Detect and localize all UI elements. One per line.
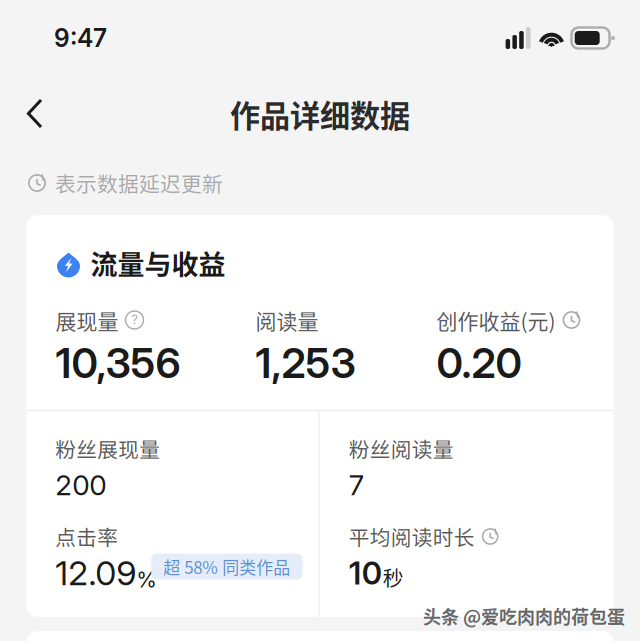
staticText: 表示数据延迟更新 <box>55 168 223 198</box>
staticText: 头条 @爱吃肉肉的荷包蛋 <box>423 603 625 629</box>
staticText: 创作收益(元) <box>436 305 555 335</box>
staticText: 12.09 <box>55 552 136 593</box>
staticText: % <box>136 567 157 593</box>
staticText: 作品详细数据 <box>230 92 410 136</box>
button[interactable]: Back <box>13 94 57 134</box>
staticText: 0.20 <box>436 338 521 388</box>
staticText: 7 <box>349 468 364 502</box>
staticText: 点击率 <box>55 521 118 551</box>
staticText: 超 58% 同类作品 <box>163 554 290 579</box>
staticText: 200 <box>55 468 106 502</box>
staticText: 流量与收益 <box>90 243 225 282</box>
staticText: 展现量 <box>55 305 118 335</box>
staticText: 粉丝展现量 <box>55 433 160 463</box>
staticText: 9:47 <box>54 23 107 53</box>
staticText: 1,253 <box>255 338 355 388</box>
staticText: 10 <box>349 554 382 592</box>
staticText: ? <box>131 312 137 327</box>
staticText: 秒 <box>383 562 404 592</box>
staticText: 粉丝阅读量 <box>349 433 454 463</box>
staticText: 平均阅读时长 <box>349 521 475 551</box>
staticText: 10,356 <box>55 338 180 388</box>
staticText: 阅读量 <box>255 305 318 335</box>
